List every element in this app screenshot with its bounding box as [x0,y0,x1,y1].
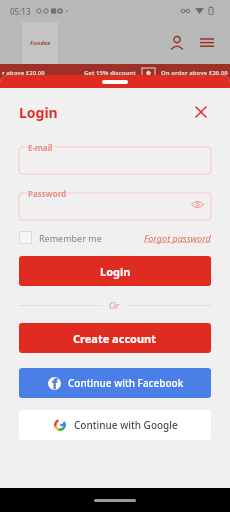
button[interactable]: Account [166,32,188,54]
button[interactable]: Create account [19,323,211,353]
button[interactable]: Close [191,102,211,122]
staticText: Login [100,264,131,279]
staticText: Or [109,299,120,311]
staticText: Continue with Facebook [68,376,184,390]
button[interactable]: Remember me [19,231,102,244]
staticText: E-mail [28,142,53,153]
staticText: Remember me [39,232,102,244]
button[interactable]: Forgot password [144,232,211,244]
button[interactable]: Continue with Facebook [19,368,211,398]
button[interactable]: Menu [196,32,218,54]
staticText: Continue with Google [74,418,178,432]
button[interactable]: Login [19,256,211,286]
staticText: Login [19,103,58,122]
button[interactable]: Show password [189,196,205,212]
staticText: r above £20.00 [2,69,45,77]
staticText: Forgot password [144,232,211,244]
staticText: On order above £20.00 [161,69,228,77]
staticText: 05:13 [10,6,31,17]
staticText: Password [28,188,67,199]
staticText: Foodex [30,39,51,47]
staticText: Get 15% discount [84,69,136,77]
button[interactable]: Continue with Google [19,410,211,440]
staticText: Create account [73,331,157,346]
